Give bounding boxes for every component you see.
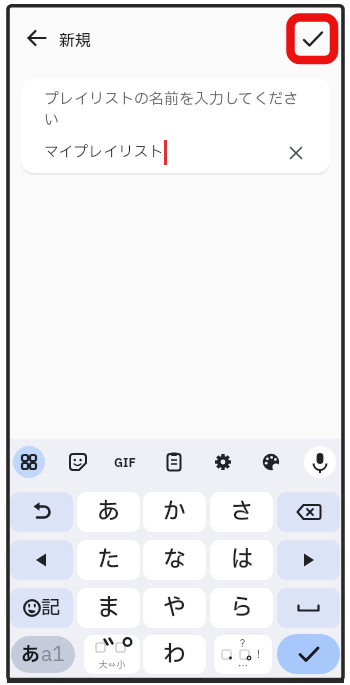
button[interactable]	[277, 588, 340, 628]
button[interactable]	[256, 447, 286, 477]
staticText: わ	[163, 638, 186, 672]
button[interactable]	[285, 142, 307, 164]
button[interactable]: や	[143, 588, 206, 628]
staticText: た	[97, 543, 120, 577]
staticText: や	[163, 591, 186, 625]
button[interactable]: わ	[143, 635, 206, 674]
button[interactable]: プレイリストの名前を入力してください	[21, 78, 330, 173]
button[interactable]: ま	[77, 588, 140, 628]
button[interactable]: た	[77, 540, 140, 580]
button[interactable]: ?	[214, 635, 272, 674]
button[interactable]: 記	[10, 588, 73, 628]
button[interactable]: あ	[11, 636, 75, 673]
staticText: プレイリストの名前を入力してください	[44, 88, 306, 131]
staticText: マイプレイリスト	[44, 141, 164, 163]
staticText: か	[163, 495, 186, 529]
staticText: あ	[21, 641, 41, 669]
button[interactable]	[277, 492, 340, 532]
button[interactable]: ら	[210, 588, 273, 628]
button[interactable]	[63, 447, 93, 477]
button[interactable]	[277, 540, 340, 580]
button[interactable]: GIF	[114, 454, 136, 472]
staticText: a1	[41, 640, 65, 670]
button[interactable]: な	[143, 540, 206, 580]
button[interactable]	[304, 446, 336, 478]
button[interactable]	[10, 492, 73, 532]
staticText: …	[238, 659, 248, 674]
button[interactable]	[159, 447, 189, 477]
button[interactable]: さ	[210, 492, 273, 532]
staticText: ら	[230, 591, 253, 625]
staticText: ま	[97, 591, 120, 625]
button[interactable]: か	[143, 492, 206, 532]
staticText: 記	[41, 594, 61, 622]
button[interactable]	[10, 540, 73, 580]
button[interactable]	[295, 24, 326, 55]
button[interactable]: 大⇔小	[84, 635, 140, 674]
button[interactable]: あ	[77, 492, 140, 532]
button[interactable]: は	[210, 540, 273, 580]
staticText: さ	[230, 495, 253, 529]
staticText: 新規	[59, 29, 92, 53]
staticText: !	[257, 647, 260, 662]
button[interactable]	[277, 634, 340, 674]
staticText: 大⇔小	[84, 658, 140, 671]
button[interactable]	[13, 446, 45, 478]
staticText: ?	[240, 636, 245, 651]
staticText: あ	[97, 495, 120, 529]
button[interactable]	[208, 447, 238, 477]
staticText: な	[163, 543, 186, 577]
button[interactable]	[22, 23, 52, 53]
staticText: は	[230, 543, 253, 577]
